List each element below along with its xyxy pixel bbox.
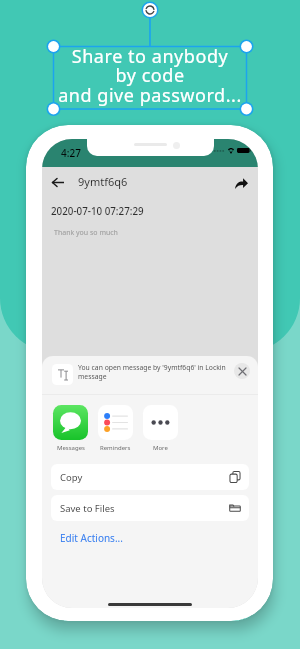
button[interactable]: More	[143, 405, 178, 452]
staticText: 9ymtf6q6	[78, 174, 128, 189]
button[interactable]: Copy	[51, 464, 249, 490]
button[interactable]: Edit Actions...	[60, 531, 123, 545]
staticText: 2020-07-10 07:27:29	[51, 205, 144, 218]
staticText: More	[153, 444, 168, 452]
staticText: Messages	[57, 444, 85, 452]
staticText: Save to Files	[60, 502, 115, 515]
button[interactable]: Close	[234, 363, 250, 379]
staticText: Reminders	[100, 444, 131, 452]
button[interactable]: Messages	[53, 405, 88, 452]
staticText: You can open message by '9ymtf6q6' in Lo…	[78, 363, 230, 381]
staticText: Thank you so much	[54, 228, 118, 238]
button[interactable]: Back	[50, 174, 66, 190]
button[interactable]: Share	[231, 173, 251, 193]
staticText: 4:27	[61, 146, 81, 160]
button[interactable]: Reminders	[98, 405, 133, 452]
button[interactable]: Save to Files	[51, 495, 249, 521]
staticText: Share to anybody by code and give passwo…	[50, 44, 250, 108]
staticText: Copy	[60, 471, 83, 484]
